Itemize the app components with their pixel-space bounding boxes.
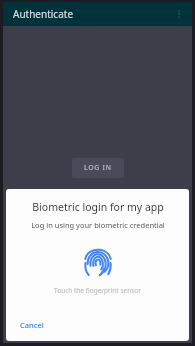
button[interactable]: More options <box>170 5 188 23</box>
button[interactable]: Cancel <box>14 317 50 333</box>
staticText: Touch the fingerprint sensor <box>54 286 141 295</box>
staticText: Biometric login for my app <box>32 200 164 214</box>
staticText: Authenticate <box>13 7 74 21</box>
staticText: LOG IN <box>84 163 112 173</box>
other: Fingerprint sensor <box>84 248 112 276</box>
staticText: Cancel <box>20 320 44 330</box>
staticText: Log in using your biometric credential <box>31 220 165 230</box>
button[interactable]: LOG IN <box>72 158 124 178</box>
